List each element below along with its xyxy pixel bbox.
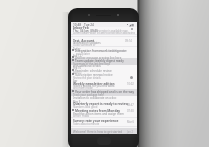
staticText: 08:47 — [127, 103, 134, 107]
staticText: 10:48 — [73, 23, 82, 27]
staticText: Notification updates — [73, 41, 101, 45]
button[interactable] — [71, 58, 137, 65]
staticText: Feb 12 — [73, 54, 82, 58]
staticText: Test, Account — [73, 39, 95, 43]
staticText: Read the action items and assign them — [73, 112, 124, 116]
button[interactable] — [71, 89, 137, 96]
staticText: and a few more — [108, 49, 127, 53]
staticText: May 9 — [73, 100, 81, 104]
staticText: Mar 6 — [127, 120, 135, 124]
staticText: 09:14 — [125, 39, 132, 43]
staticText: Weekly newsletter edition — [73, 82, 115, 86]
staticText: Today — [73, 47, 81, 51]
staticText: Summary of the last few days — [73, 62, 111, 66]
button[interactable] — [71, 128, 137, 134]
staticText: Quarterly report is ready to review — [73, 102, 129, 106]
staticText: set up later — [76, 52, 90, 56]
staticText: Numbers look good — [73, 105, 98, 109]
staticText: Track your package here — [73, 93, 104, 97]
staticText: a new version is available now — [91, 29, 128, 33]
staticText: Invitation to collaborate on a doc — [73, 96, 117, 100]
staticText: with additional details — [73, 64, 101, 68]
staticText: Jan 2 — [127, 130, 133, 134]
staticText: Stories picked for you this week — [73, 84, 115, 88]
staticText: Mar 02 — [73, 71, 82, 75]
staticText: before Friday — [73, 114, 90, 118]
staticText: 07:30 — [127, 109, 134, 113]
staticText: Your order has shipped and is on the way — [75, 90, 135, 94]
staticText: Feb 10 — [73, 66, 82, 70]
staticText: Thu, 04 Jan, 09:25 — [73, 29, 99, 33]
staticText: Welcome! Here is how to get started — [73, 130, 123, 134]
staticText: Apr — [73, 79, 78, 83]
staticText: Integration framework testing note — [75, 49, 126, 53]
staticText: Another message preview line here — [75, 56, 122, 60]
staticText: Quick summary of — [73, 43, 96, 47]
staticText: Meeting notes from Monday — [75, 109, 121, 113]
staticText: Subscription renewal notice — [75, 73, 113, 77]
staticText: Reminder: schedule review — [75, 69, 112, 73]
staticText: 10:02 — [127, 82, 134, 86]
staticText: and more inside — [73, 86, 93, 90]
staticText: Inbox·Feb — [73, 26, 89, 30]
staticText: ◢ ▮ — [129, 23, 135, 27]
staticText: Tue 24 — [84, 23, 94, 27]
staticText: Takes about a minute — [73, 122, 100, 126]
staticText: Review the plan details — [73, 76, 101, 80]
staticText: Team update: weekly digest ready — [75, 59, 124, 63]
staticText: Survey: rate your experience — [73, 119, 119, 123]
staticText: Lorem ipsum dolor sit amet consectetur a… — [73, 31, 135, 35]
